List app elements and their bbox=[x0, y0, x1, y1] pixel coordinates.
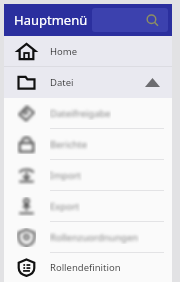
staticText: Rollendefinition bbox=[50, 261, 172, 274]
staticText: Datei bbox=[50, 76, 145, 89]
button[interactable]: Datei bbox=[4, 67, 172, 98]
button[interactable]: Export bbox=[4, 191, 172, 221]
button[interactable]: Import bbox=[4, 160, 172, 190]
button[interactable]: Suche bbox=[92, 8, 168, 32]
staticText: Home bbox=[50, 45, 172, 58]
staticText: Hauptmenü bbox=[14, 11, 88, 29]
staticText: Dateifreigabe bbox=[50, 107, 111, 120]
button[interactable]: Dateifreigabe bbox=[4, 98, 172, 128]
button[interactable]: Rollenzuordnungen bbox=[4, 222, 172, 252]
button[interactable]: Home bbox=[4, 36, 172, 66]
button[interactable]: Rollendefinition bbox=[4, 253, 172, 282]
staticText: Export bbox=[50, 200, 80, 213]
staticText: Berichte bbox=[50, 138, 88, 151]
staticText: Rollenzuordnungen bbox=[50, 231, 139, 244]
staticText: Import bbox=[50, 169, 82, 182]
button[interactable]: Berichte bbox=[4, 129, 172, 159]
